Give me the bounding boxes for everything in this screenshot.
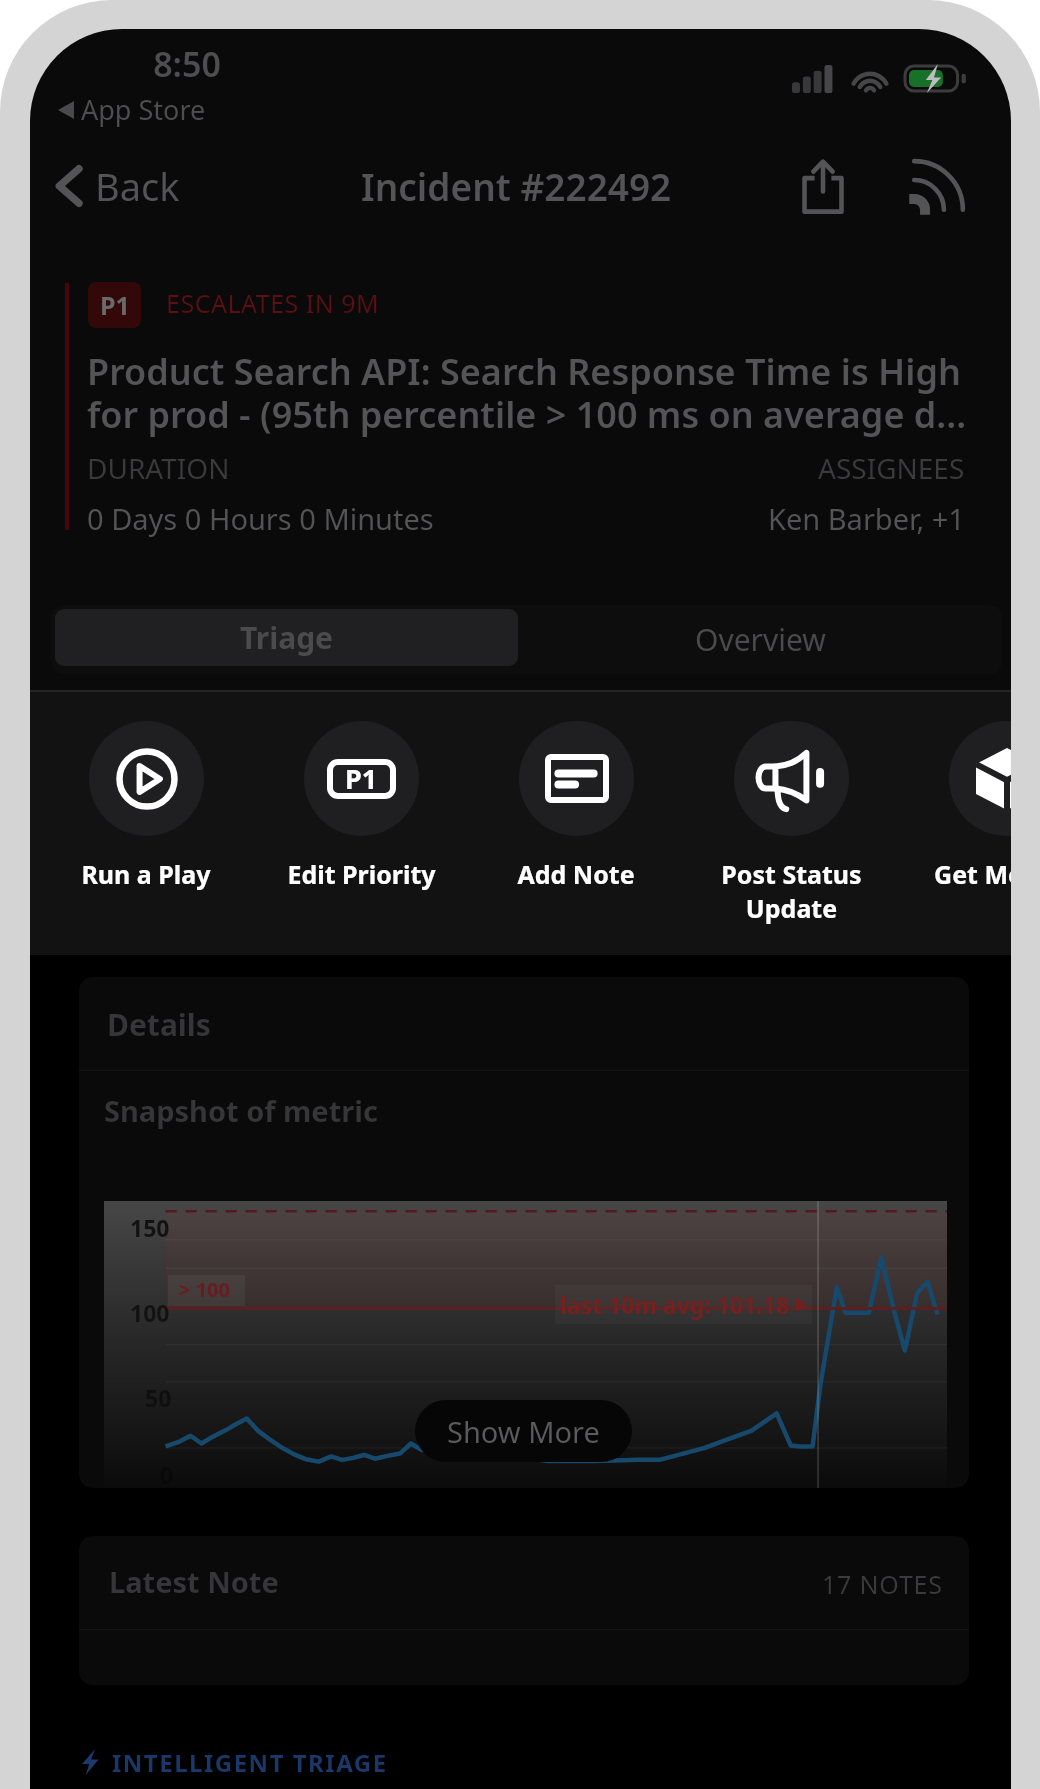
staticText: Back	[95, 160, 180, 212]
staticText: P1	[100, 288, 130, 322]
staticText: P1	[345, 760, 378, 797]
button[interactable]: Add Note	[469, 721, 683, 891]
staticText: Overview	[695, 619, 826, 660]
staticText: Show More	[447, 1412, 600, 1451]
staticText: Triage	[240, 617, 334, 658]
staticText: App Store	[81, 91, 206, 128]
staticText: 100	[130, 1297, 170, 1328]
staticText: 8:50	[127, 41, 247, 87]
staticText: 150	[130, 1212, 170, 1243]
button[interactable]: Share	[787, 151, 859, 221]
staticText: Run a Play	[81, 857, 211, 891]
staticText: ESCALATES IN 9M	[166, 286, 380, 320]
button[interactable]: Get Metrics	[899, 721, 1011, 891]
button[interactable]: Show More	[415, 1400, 632, 1462]
staticText: Post Status Update	[721, 857, 862, 925]
staticText: Product Search API: Search Response Time…	[87, 347, 997, 439]
button[interactable]: Subscribe	[898, 151, 978, 221]
staticText: > 100	[179, 1276, 230, 1303]
staticText: ASSIGNEES	[818, 449, 965, 487]
staticText: Latest Note	[109, 1562, 279, 1601]
staticText: Edit Priority	[287, 857, 436, 891]
staticText: Snapshot of metric	[104, 1091, 378, 1130]
staticText: Incident #222492	[361, 161, 672, 211]
staticText: Add Note	[517, 857, 635, 891]
button[interactable]: Back	[56, 151, 180, 221]
staticText: 0 Days 0 Hours 0 Minutes	[87, 499, 434, 538]
staticText: DURATION	[87, 449, 230, 487]
button[interactable]: P1	[254, 721, 468, 891]
staticText: last 10m avg: 101.18	[560, 1289, 789, 1320]
staticText: Details	[107, 1004, 211, 1045]
staticText: Ken Barber, +1	[768, 499, 965, 538]
button[interactable]: Run a Play	[39, 721, 253, 891]
staticText: Get Metrics	[934, 857, 1011, 891]
button[interactable]: Triage	[55, 609, 518, 666]
staticText: 17 NOTES	[822, 1567, 943, 1601]
staticText: INTELLIGENT TRIAGE	[112, 1746, 388, 1779]
button[interactable]: Overview	[523, 605, 998, 674]
staticText: 50	[145, 1382, 172, 1413]
button[interactable]: Post Status Update	[684, 721, 898, 925]
